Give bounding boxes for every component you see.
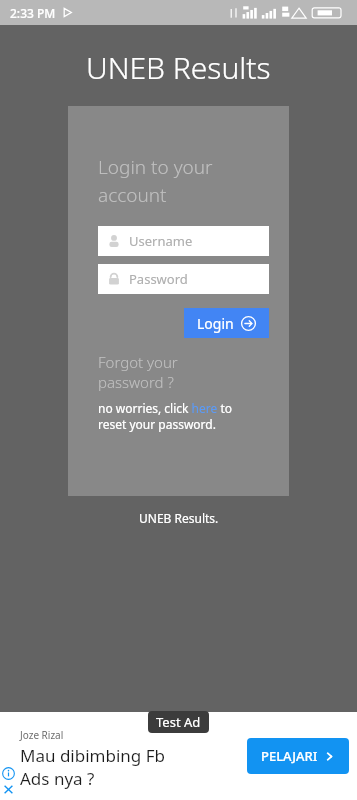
staticText: Password bbox=[129, 270, 188, 288]
staticText: password ? bbox=[98, 372, 174, 392]
other: Ad information bbox=[2, 767, 15, 780]
staticText: Login bbox=[197, 314, 234, 333]
staticText: PELAJARI bbox=[261, 747, 318, 765]
staticText: Test Ad bbox=[156, 713, 201, 731]
staticText: Username bbox=[129, 232, 193, 250]
staticText: UNEB Results. bbox=[139, 510, 219, 526]
button[interactable]: PELAJARI bbox=[247, 738, 349, 774]
button[interactable]: no worries, click here to bbox=[98, 400, 232, 432]
staticText: 2:33 PM bbox=[10, 5, 56, 21]
staticText: Forgot your bbox=[98, 352, 178, 372]
other: Close ad bbox=[2, 783, 15, 796]
button[interactable]: Password bbox=[98, 264, 269, 294]
staticText: Joze Rizal bbox=[20, 728, 64, 742]
button[interactable]: Login bbox=[184, 308, 269, 338]
button[interactable]: Username bbox=[98, 226, 269, 256]
staticText: Login to your bbox=[98, 154, 213, 180]
staticText: UNEB Results bbox=[86, 47, 271, 88]
staticText: Mau dibimbing Fb bbox=[20, 744, 165, 767]
staticText: no worries, click here to bbox=[98, 400, 232, 416]
staticText: Ads nya ? bbox=[20, 767, 95, 790]
button[interactable]: Joze Rizal bbox=[0, 712, 357, 800]
staticText: reset your password. bbox=[98, 416, 216, 432]
staticText: account bbox=[98, 182, 167, 208]
